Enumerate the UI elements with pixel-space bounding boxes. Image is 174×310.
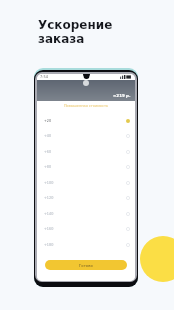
staticText: заказа (38, 32, 85, 46)
staticText: +140 (44, 212, 54, 216)
staticText: +180 (44, 243, 54, 247)
button[interactable]: +160 (44, 221, 130, 236)
button[interactable]: +180 (44, 237, 130, 252)
staticText: +80 (44, 165, 52, 169)
staticText: 7:54 (40, 75, 48, 79)
staticText: Ускорение (38, 18, 113, 32)
button[interactable]: +60 (44, 144, 130, 159)
staticText: Готово (79, 263, 93, 267)
button[interactable]: +20 (44, 113, 130, 128)
staticText: Повышенная стоимость (37, 104, 135, 108)
button[interactable]: +120 (44, 190, 130, 205)
staticText: +160 (44, 227, 54, 231)
staticText: +60 (44, 150, 52, 154)
button[interactable]: Готово (45, 260, 127, 270)
button[interactable]: +100 (44, 175, 130, 190)
button[interactable]: +80 (44, 159, 130, 174)
staticText: +20 (44, 119, 52, 123)
button[interactable]: +40 (44, 128, 130, 143)
button[interactable]: +140 (44, 206, 130, 221)
staticText: +40 (44, 134, 52, 138)
staticText: +120 (44, 196, 54, 200)
staticText: +100 (44, 181, 54, 185)
staticText: ≈219 р. (113, 93, 131, 98)
